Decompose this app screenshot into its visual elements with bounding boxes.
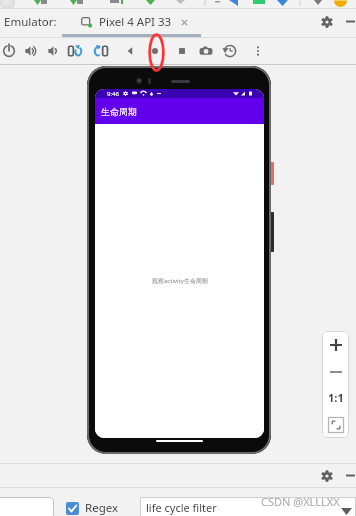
button[interactable]: Home (144, 38, 166, 64)
button[interactable]: Zoom in (322, 331, 349, 359)
button[interactable]: Volume down (43, 38, 65, 64)
button[interactable]: More options (247, 38, 269, 64)
staticText: Pixel 4 API 33 (99, 14, 172, 30)
button[interactable]: Minimize (344, 9, 356, 34)
staticText: 生命周期 (101, 106, 137, 117)
button[interactable]: 1:1 (322, 384, 349, 411)
button[interactable]: Fit to screen (322, 411, 349, 438)
button[interactable]: Minimize (344, 464, 356, 487)
button[interactable]: Zoom out (322, 359, 349, 384)
button[interactable]: Power (0, 38, 20, 64)
staticText: 9:46 (107, 90, 119, 98)
button[interactable]: Close tab (179, 17, 190, 28)
button[interactable]: Volume up (20, 38, 42, 64)
button[interactable]: Screenshot (195, 38, 217, 64)
staticText: 1:1 (328, 390, 344, 405)
staticText: 观察activity生命周期 (152, 277, 208, 285)
button[interactable]: Pixel 4 API 33 (81, 14, 190, 30)
button[interactable]: Rotate history (219, 38, 241, 64)
button[interactable]: Rotate left (64, 38, 86, 64)
button[interactable]: Overview (171, 38, 193, 64)
staticText: CSDN @XLLLXX (261, 494, 340, 509)
staticText: Regex (85, 500, 119, 516)
staticText: life cycle filter (146, 500, 217, 515)
button[interactable]: Settings (319, 464, 334, 487)
button[interactable]: Back (119, 38, 141, 64)
button[interactable]: Regex (66, 500, 119, 516)
button[interactable]: Rotate right (90, 38, 112, 64)
button[interactable]: Settings (319, 9, 334, 34)
staticText: Emulator: (4, 14, 57, 30)
